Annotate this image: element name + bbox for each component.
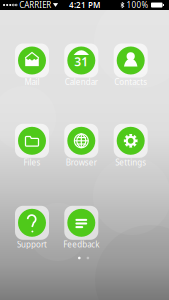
staticText: Mail <box>24 77 39 87</box>
button[interactable]: Mail <box>15 43 49 86</box>
button[interactable]: Files <box>15 124 49 167</box>
button[interactable]: Browser <box>64 124 98 167</box>
button[interactable]: Settings <box>114 124 148 167</box>
staticText: Support <box>17 239 47 250</box>
button[interactable]: Contacts <box>114 43 148 86</box>
staticText: Settings <box>115 157 146 168</box>
staticText: Calendar <box>65 77 98 87</box>
staticText: Feedback <box>63 239 99 250</box>
staticText: Contacts <box>114 77 147 87</box>
staticText: 100% <box>127 0 149 10</box>
button[interactable]: Feedback <box>63 206 99 249</box>
staticText: Files <box>23 157 40 168</box>
staticText: 4:21 PM <box>69 0 100 10</box>
button[interactable]: Support <box>15 206 49 249</box>
staticText: CARRIER <box>19 0 51 10</box>
staticText: 31 <box>74 54 88 70</box>
button[interactable]: 31 <box>64 43 98 86</box>
staticText: Browser <box>66 157 97 168</box>
